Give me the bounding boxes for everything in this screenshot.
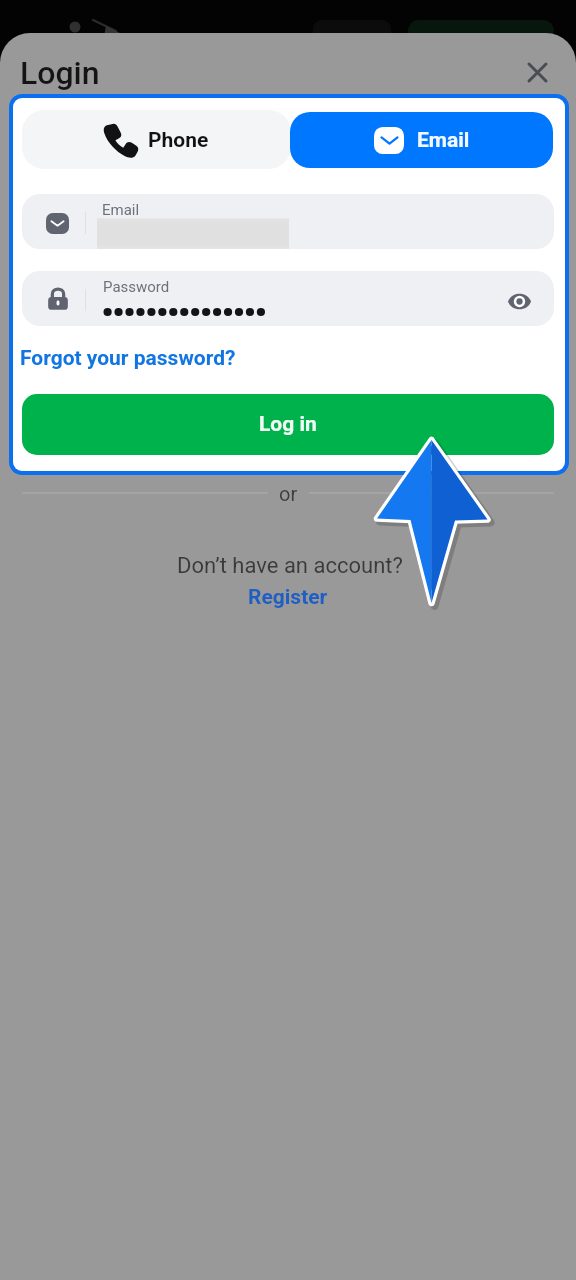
staticText: Phone bbox=[148, 128, 209, 153]
button[interactable]: Email bbox=[22, 194, 554, 249]
button[interactable]: Password bbox=[22, 271, 554, 326]
staticText: Log in bbox=[259, 412, 317, 437]
staticText: Login bbox=[20, 54, 100, 92]
staticText: Don’t have an account? bbox=[177, 553, 403, 579]
staticText: Email bbox=[417, 128, 470, 153]
button[interactable]: Register bbox=[248, 585, 328, 610]
button[interactable]: Close bbox=[514, 49, 560, 95]
staticText: or bbox=[279, 482, 298, 505]
staticText: Email bbox=[102, 201, 140, 219]
button[interactable]: Log in bbox=[22, 394, 554, 455]
button[interactable]: Phone bbox=[22, 110, 291, 169]
staticText: Password bbox=[103, 278, 170, 296]
button[interactable]: Email bbox=[290, 112, 553, 168]
button[interactable]: Forgot your password? bbox=[20, 346, 236, 371]
button[interactable]: Show password bbox=[505, 285, 533, 313]
